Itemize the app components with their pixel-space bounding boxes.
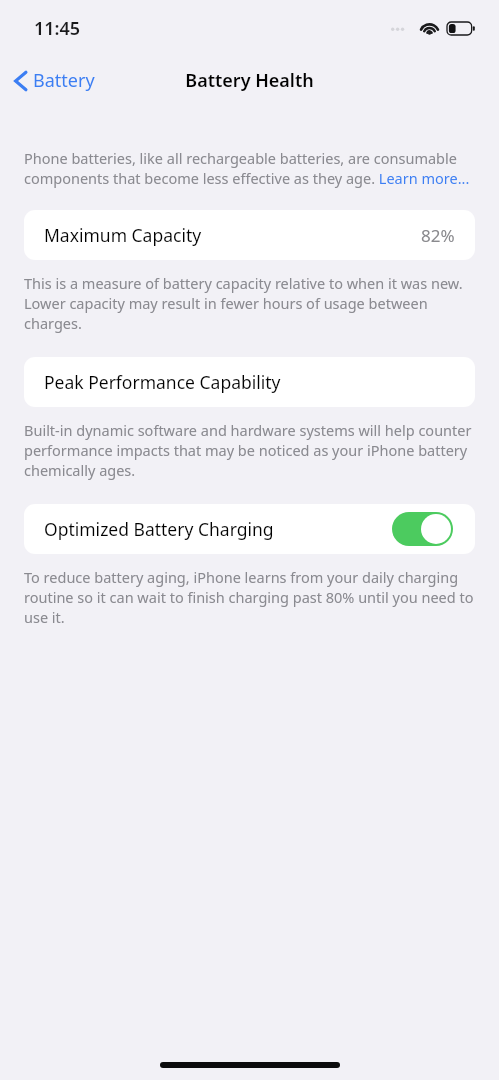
staticText: To reduce battery aging, iPhone learns f… — [24, 567, 475, 627]
staticText: Maximum Capacity — [44, 223, 202, 247]
staticText: Battery Health — [185, 68, 314, 93]
staticText: Built-in dynamic software and hardware s… — [24, 420, 475, 480]
button[interactable]: Optimized Battery Charging toggle, on — [392, 512, 453, 546]
button[interactable]: Maximum Capacity — [24, 210, 475, 260]
button[interactable]: Optimized Battery Charging — [24, 504, 475, 554]
button[interactable]: Peak Performance Capability — [24, 357, 475, 407]
staticText: This is a measure of battery capacity re… — [24, 273, 475, 333]
staticText: Peak Performance Capability — [44, 370, 281, 394]
staticText: Phone batteries, like all rechargeable b… — [24, 148, 475, 188]
staticText: 11:45 — [34, 16, 81, 41]
staticText: 82% — [421, 224, 455, 247]
staticText: Battery — [33, 68, 95, 93]
staticText: Optimized Battery Charging — [44, 517, 274, 541]
button[interactable]: Battery — [0, 64, 105, 97]
